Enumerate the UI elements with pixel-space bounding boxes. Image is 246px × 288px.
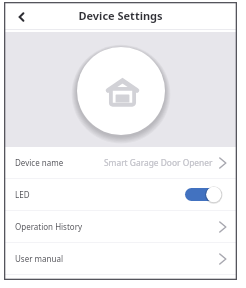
button[interactable]: LED xyxy=(4,179,237,210)
staticText: Device Settings xyxy=(78,8,163,23)
staticText: Device name xyxy=(15,157,64,168)
staticText: Operation History xyxy=(15,221,83,232)
button[interactable]: Operation History xyxy=(4,211,237,242)
button[interactable]: Device name xyxy=(4,147,237,178)
button[interactable]: Back xyxy=(12,6,32,26)
staticText: LED xyxy=(15,189,30,200)
button[interactable]: LED toggle xyxy=(185,186,222,203)
staticText: User manual xyxy=(15,253,63,264)
button[interactable]: User manual xyxy=(4,243,237,274)
staticText: Smart Garage Door Opener xyxy=(104,157,213,168)
